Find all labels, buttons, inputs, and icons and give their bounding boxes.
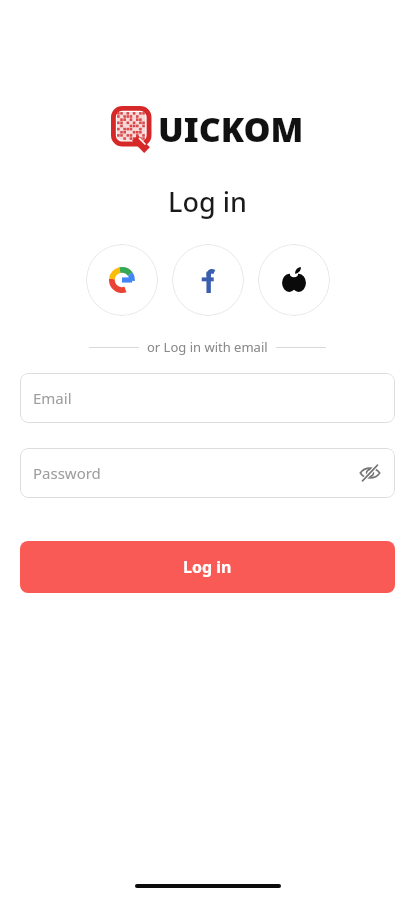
button[interactable]: Password [20,448,395,498]
staticText: Email [33,388,72,408]
staticText: Log in [168,183,247,220]
button[interactable]: Log in [20,541,395,593]
button[interactable]: Email [20,373,395,423]
button[interactable]: Sign in with Facebook [172,244,244,316]
staticText: Password [33,463,101,483]
staticText: Log in [183,556,232,578]
other: Quickom logo [111,106,157,152]
button[interactable]: Sign in with Apple [258,244,330,316]
button[interactable]: Sign in with Google [86,244,158,316]
button[interactable]: Show password [356,459,384,487]
staticText: UICKOM [158,106,304,152]
staticText: or Log in with email [147,338,268,356]
